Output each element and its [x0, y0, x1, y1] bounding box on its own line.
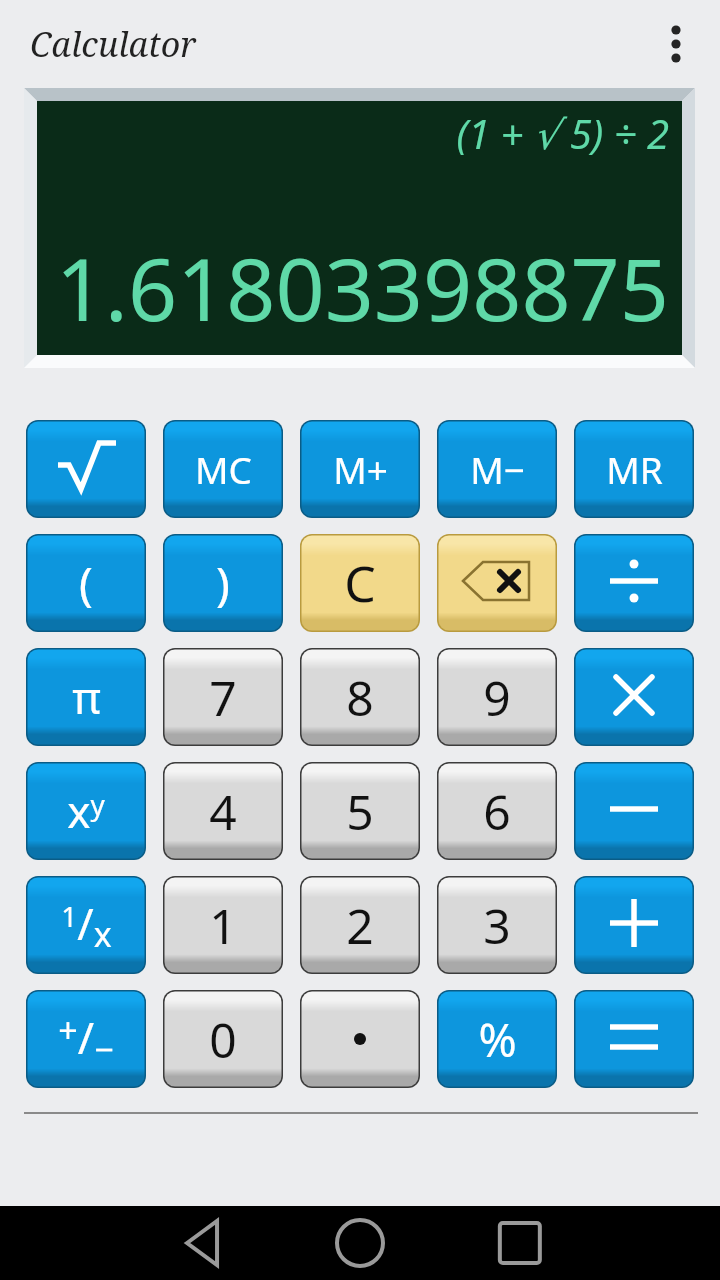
- button[interactable]: xy: [26, 762, 146, 860]
- staticText: %: [478, 1008, 517, 1071]
- staticText: π: [72, 667, 101, 727]
- staticText: (: [79, 552, 93, 615]
- button[interactable]: M−: [437, 420, 557, 518]
- button[interactable]: Backspace: [437, 534, 557, 632]
- staticText: 2: [346, 893, 374, 958]
- staticText: 3: [483, 893, 511, 958]
- button[interactable]: MC: [163, 420, 283, 518]
- staticText: 4: [209, 779, 237, 844]
- button[interactable]: 8: [300, 648, 420, 746]
- button[interactable]: MR: [574, 420, 694, 518]
- staticText: Calculator: [30, 21, 197, 67]
- button[interactable]: Square root: [26, 420, 146, 518]
- button[interactable]: 2: [300, 876, 420, 974]
- staticText: C: [344, 549, 376, 617]
- button[interactable]: 0: [163, 990, 283, 1088]
- button[interactable]: 7: [163, 648, 283, 746]
- staticText: (1 + √ 5) ÷ 2: [456, 106, 669, 160]
- staticText: ): [216, 552, 230, 615]
- staticText: 9: [483, 665, 511, 730]
- staticText: M−: [470, 444, 525, 494]
- button[interactable]: Plus minus: [26, 990, 146, 1088]
- button[interactable]: 5: [300, 762, 420, 860]
- staticText: 7: [209, 665, 237, 730]
- button[interactable]: 1: [163, 876, 283, 974]
- button[interactable]: 6: [437, 762, 557, 860]
- button[interactable]: More options: [652, 20, 700, 68]
- button[interactable]: π: [26, 648, 146, 746]
- button[interactable]: Multiply: [574, 648, 694, 746]
- staticText: 6: [483, 779, 511, 844]
- button[interactable]: 3: [437, 876, 557, 974]
- staticText: 1.61803398875: [55, 229, 669, 346]
- staticText: +/−: [58, 1007, 114, 1072]
- staticText: 5: [346, 779, 374, 844]
- button[interactable]: 9: [437, 648, 557, 746]
- button[interactable]: Decimal point: [300, 990, 420, 1088]
- staticText: 0: [209, 1007, 237, 1072]
- button[interactable]: Plus: [574, 876, 694, 974]
- button[interactable]: (: [26, 534, 146, 632]
- button[interactable]: Minus: [574, 762, 694, 860]
- button[interactable]: ): [163, 534, 283, 632]
- staticText: MR: [606, 444, 663, 494]
- button[interactable]: Divide: [574, 534, 694, 632]
- button[interactable]: 4: [163, 762, 283, 860]
- staticText: 1: [209, 893, 237, 958]
- staticText: M+: [333, 444, 388, 494]
- button[interactable]: %: [437, 990, 557, 1088]
- staticText: MC: [195, 444, 252, 494]
- staticText: xy: [67, 781, 105, 841]
- staticText: 8: [346, 665, 374, 730]
- button[interactable]: C: [300, 534, 420, 632]
- staticText: 1/x: [61, 893, 112, 957]
- button[interactable]: Equals: [574, 990, 694, 1088]
- button[interactable]: 1/x: [26, 876, 146, 974]
- button[interactable]: M+: [300, 420, 420, 518]
